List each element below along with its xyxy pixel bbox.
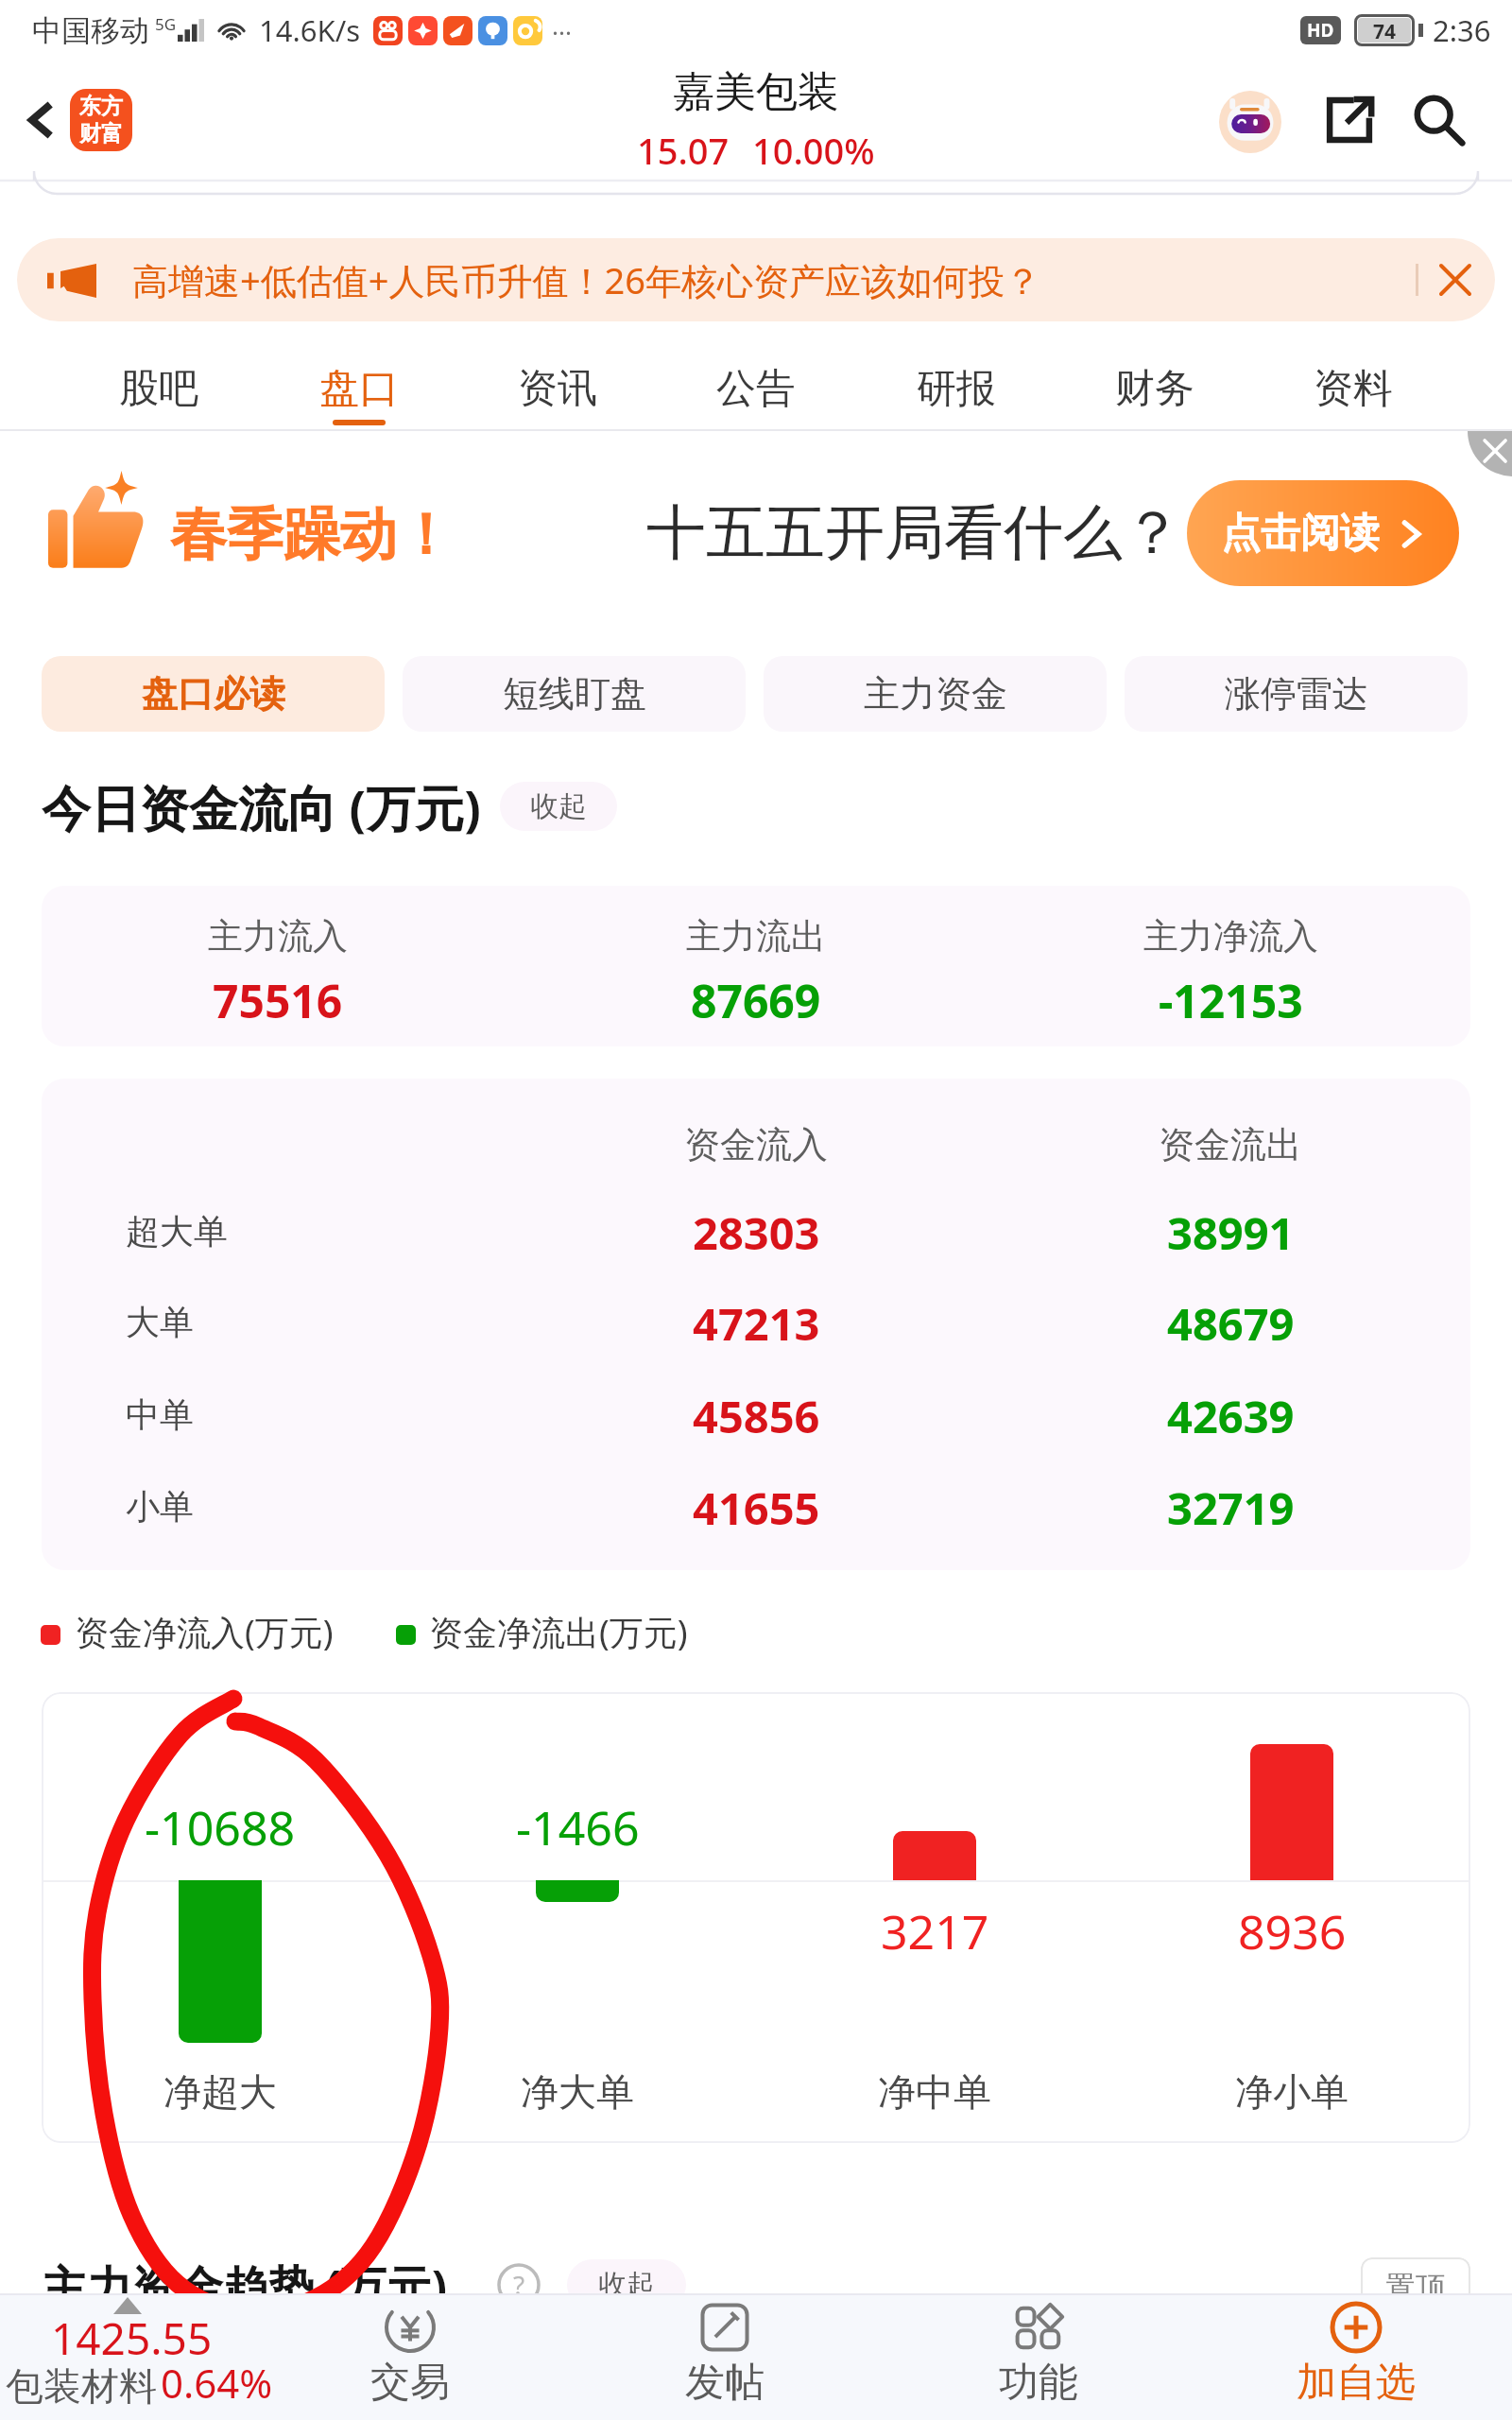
staticText: 28303	[693, 1202, 820, 1263]
staticText: -1466	[516, 1795, 640, 1859]
staticText: 1425.55	[51, 2308, 213, 2368]
staticText: 东方	[79, 93, 123, 120]
staticText: 资金净流入(万元)	[75, 1609, 334, 1655]
button[interactable]: 收起	[500, 782, 617, 831]
staticText: 资料	[1314, 364, 1393, 414]
button[interactable]: 财务	[1089, 344, 1221, 425]
button[interactable]: Search	[1408, 89, 1470, 151]
button[interactable]: 置顶	[1361, 2257, 1470, 2318]
staticText: 财务	[1115, 364, 1194, 414]
staticText: HD	[1307, 18, 1334, 43]
staticText: -10688	[145, 1795, 296, 1859]
staticText: 资讯	[518, 364, 597, 414]
button[interactable]: East Money home	[70, 89, 132, 151]
button[interactable]: 股吧	[93, 344, 225, 425]
staticText: 47213	[693, 1293, 820, 1354]
staticText: 净小单	[1235, 2068, 1349, 2116]
staticText: 中单	[126, 1393, 194, 1436]
staticText: 十五五开局看什么？	[646, 495, 1182, 570]
staticText: 10.00%	[752, 126, 875, 175]
staticText: 74	[1373, 18, 1397, 43]
button[interactable]: 资讯	[491, 344, 624, 425]
staticText: 主力资金趋势 (万元)	[42, 2256, 448, 2318]
staticText: 中国移动	[32, 12, 149, 49]
staticText: 15.07	[637, 126, 730, 175]
staticText: 41655	[693, 1478, 820, 1538]
button[interactable]: 点击阅读	[1187, 480, 1459, 586]
button[interactable]: Share	[1318, 89, 1381, 151]
staticText: 嘉美包装	[673, 66, 839, 118]
staticText: 38991	[1167, 1202, 1295, 1263]
staticText: 大单	[126, 1301, 194, 1343]
button[interactable]: Close ad	[1459, 431, 1512, 484]
staticText: 点击阅读	[1221, 509, 1380, 559]
staticText: 42639	[1167, 1386, 1295, 1446]
staticText: 8936	[1238, 1899, 1347, 1963]
staticText: 资金流入	[684, 1122, 828, 1167]
staticText: 主力净流入	[1143, 914, 1318, 959]
staticText: 资金流出	[1159, 1122, 1302, 1167]
button[interactable]: 主力资金	[764, 656, 1107, 732]
staticText: 48679	[1167, 1293, 1295, 1354]
staticText: 0.64%	[161, 2356, 273, 2410]
staticText: 2:36	[1433, 10, 1491, 50]
staticText: 今日资金流向 (万元)	[42, 773, 481, 840]
staticText: -12153	[1159, 970, 1303, 1031]
button[interactable]: 公告	[690, 344, 822, 425]
staticText: 研报	[917, 364, 996, 414]
staticText: 主力流入	[208, 914, 348, 959]
staticText: 32719	[1167, 1478, 1295, 1538]
staticText: 短线盯盘	[503, 671, 646, 717]
staticText: 净中单	[878, 2068, 991, 2116]
staticText: 净大单	[521, 2068, 634, 2116]
staticText: 净超大	[163, 2068, 277, 2116]
staticText: 盘口	[319, 364, 399, 414]
staticText: 涨停雷达	[1225, 671, 1368, 717]
button[interactable]: Back	[13, 92, 70, 148]
staticText: 收起	[530, 788, 587, 824]
staticText: 45856	[693, 1386, 820, 1446]
button[interactable]: 加自选	[1252, 2293, 1460, 2420]
staticText: 盘口必读	[142, 671, 285, 717]
staticText: 发帖	[685, 2358, 765, 2408]
button[interactable]: 交易	[306, 2293, 514, 2420]
staticText: 3217	[881, 1899, 989, 1963]
staticText: 14.6K/s	[259, 10, 361, 50]
staticText: 75516	[213, 970, 343, 1031]
staticText: ···	[552, 15, 572, 48]
button[interactable]: 1425.55	[0, 2293, 274, 2420]
staticText: 财富	[79, 120, 123, 147]
staticText: 收起	[598, 2267, 655, 2303]
button[interactable]: 短线盯盘	[403, 656, 746, 732]
button[interactable]: 研报	[890, 344, 1022, 425]
staticText: 春季躁动！	[170, 499, 454, 571]
button[interactable]: 功能	[935, 2293, 1143, 2420]
staticText: 交易	[370, 2358, 450, 2408]
staticText: 公告	[716, 364, 796, 414]
staticText: 高增速+低估值+人民币升值！26年核心资产应该如何投？	[132, 255, 1040, 304]
staticText: 功能	[999, 2358, 1078, 2408]
button[interactable]: 涨停雷达	[1125, 656, 1468, 732]
staticText: 加自选	[1297, 2358, 1416, 2408]
staticText: 5G	[155, 13, 177, 35]
button[interactable]: 发帖	[621, 2293, 829, 2420]
staticText: 超大单	[126, 1210, 228, 1253]
staticText: 主力资金	[864, 671, 1007, 717]
button[interactable]: 高增速+低估值+人民币升值！26年核心资产应该如何投？	[17, 238, 1495, 321]
staticText: 小单	[126, 1485, 194, 1528]
staticText: 包装材料	[6, 2362, 157, 2410]
staticText: ?	[513, 2267, 525, 2303]
button[interactable]: 盘口必读	[42, 656, 385, 732]
staticText: 置顶	[1385, 2269, 1446, 2307]
button[interactable]: 盘口	[293, 344, 425, 425]
button[interactable]: 收起	[567, 2259, 686, 2310]
button[interactable]: 资料	[1287, 344, 1419, 425]
staticText: 87669	[691, 970, 821, 1031]
button[interactable]: AI assistant	[1219, 91, 1281, 153]
staticText: 主力流出	[686, 914, 826, 959]
staticText: 资金净流出(万元)	[429, 1609, 688, 1655]
button[interactable]: Close banner	[1433, 257, 1478, 302]
staticText: 股吧	[119, 364, 198, 414]
